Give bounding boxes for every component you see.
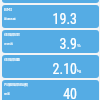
staticText: kg xyxy=(77,68,82,74)
staticText: 内臓脂肪指数 xyxy=(4,82,28,88)
staticText: 2.10 xyxy=(2,61,77,77)
staticText: 非肥満 xyxy=(4,42,13,46)
staticText: 普通体重 xyxy=(4,17,16,21)
staticText: 標準 xyxy=(4,92,10,96)
button[interactable]: 内臓脂肪指数 xyxy=(2,80,99,100)
staticText: 3.9 xyxy=(2,36,77,52)
staticText: 19.3 xyxy=(2,11,77,27)
staticText: % xyxy=(77,43,81,49)
staticText: 40 xyxy=(2,86,77,100)
staticText: 体脂肪量 xyxy=(4,57,20,63)
button[interactable]: BMI xyxy=(2,5,99,28)
button[interactable]: 体脂肪率 xyxy=(2,30,99,53)
staticText: BMI xyxy=(4,7,12,13)
staticText: 体脂肪率 xyxy=(4,32,20,38)
button[interactable]: 体脂肪量 xyxy=(2,55,99,78)
